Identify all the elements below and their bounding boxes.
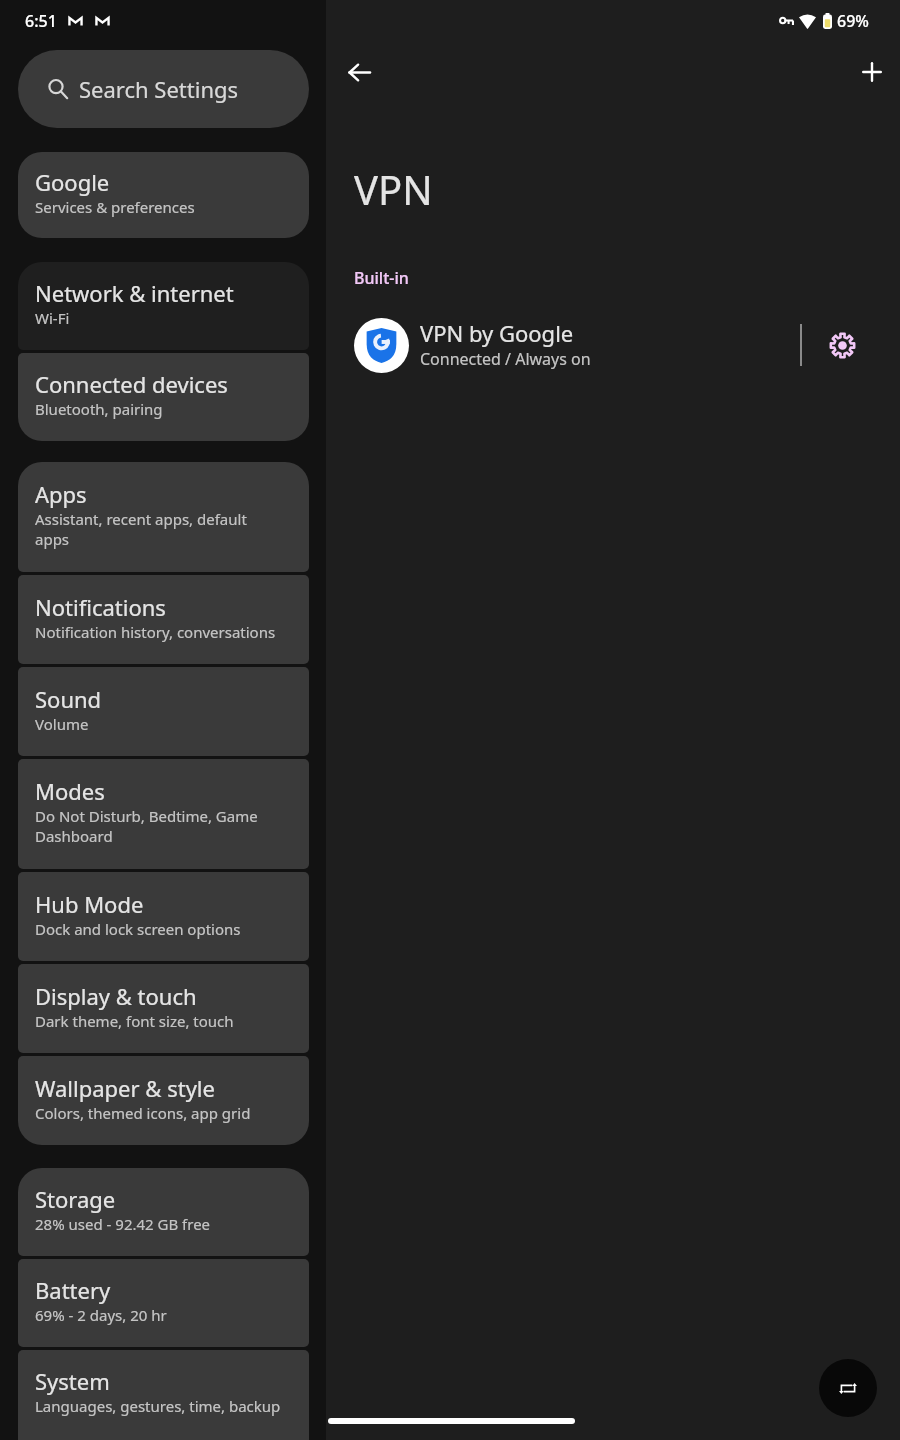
staticText: Colors, themed icons, app grid <box>35 1103 251 1123</box>
staticText: 69% <box>837 10 869 32</box>
staticText: Hub Mode <box>35 889 144 919</box>
staticText: Do Not Disturb, Bedtime, Game Dashboard <box>35 806 258 846</box>
button[interactable]: Modes <box>18 759 309 869</box>
staticText: 6:51 <box>25 10 57 32</box>
button[interactable]: Storage <box>18 1168 309 1256</box>
staticText: Apps <box>35 479 87 509</box>
staticText: Connected / Always on <box>420 348 591 370</box>
staticText: VPN by Google <box>420 318 574 348</box>
button[interactable]: Network & internet <box>18 262 309 350</box>
staticText: 69% - 2 days, 20 hr <box>35 1305 167 1325</box>
button[interactable]: Sound <box>18 667 309 756</box>
staticText: Volume <box>35 714 89 734</box>
button[interactable]: Notifications <box>18 575 309 664</box>
staticText: Modes <box>35 776 105 806</box>
button[interactable]: Search Settings <box>18 50 309 128</box>
staticText: Notification history, conversations <box>35 622 276 642</box>
staticText: Battery <box>35 1275 111 1305</box>
staticText: Google <box>35 167 110 197</box>
staticText: Built-in <box>354 267 409 289</box>
staticText: Assistant, recent apps, default apps <box>35 509 247 549</box>
staticText: Network & internet <box>35 278 234 308</box>
staticText: 28% used - 92.42 GB free <box>35 1214 211 1234</box>
button[interactable]: Switch panes <box>819 1359 877 1417</box>
button[interactable]: Wallpaper & style <box>18 1056 309 1145</box>
button[interactable]: Display & touch <box>18 964 309 1053</box>
button[interactable]: System <box>18 1350 309 1440</box>
button[interactable]: Hub Mode <box>18 872 309 961</box>
staticText: Bluetooth, pairing <box>35 399 163 419</box>
button[interactable]: Google <box>18 152 309 238</box>
staticText: Wi-Fi <box>35 308 70 328</box>
staticText: Search Settings <box>79 74 239 104</box>
staticText: Display & touch <box>35 981 197 1011</box>
staticText: Services & preferences <box>35 197 195 217</box>
button[interactable]: Back <box>331 44 387 100</box>
button[interactable]: VPN by Google <box>326 307 800 383</box>
staticText: Connected devices <box>35 369 228 399</box>
button[interactable]: Apps <box>18 462 309 572</box>
button[interactable]: VPN settings <box>802 307 900 383</box>
staticText: Notifications <box>35 592 166 622</box>
staticText: Dark theme, font size, touch <box>35 1011 234 1031</box>
button[interactable]: Battery <box>18 1259 309 1347</box>
button[interactable]: Connected devices <box>18 353 309 441</box>
staticText: VPN <box>354 162 433 216</box>
staticText: Sound <box>35 684 102 714</box>
staticText: Languages, gestures, time, backup <box>35 1396 281 1416</box>
button[interactable]: Add <box>844 44 900 100</box>
staticText: System <box>35 1366 110 1396</box>
staticText: Storage <box>35 1184 116 1214</box>
staticText: Dock and lock screen options <box>35 919 241 939</box>
staticText: Wallpaper & style <box>35 1073 215 1103</box>
